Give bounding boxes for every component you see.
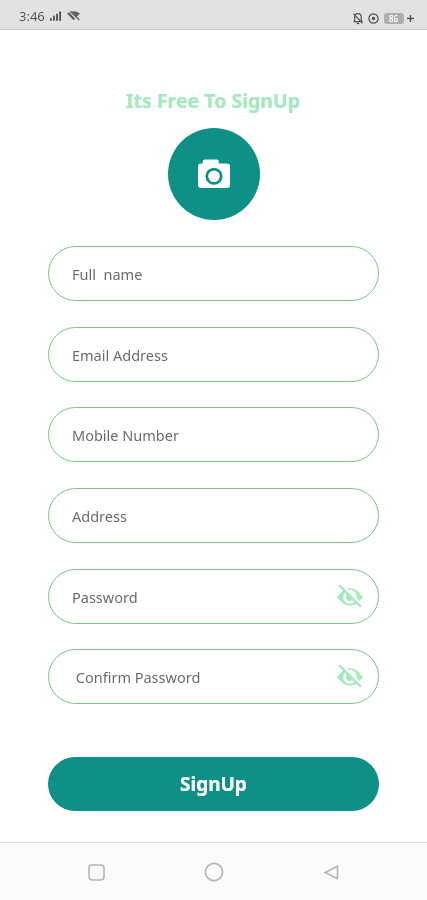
button[interactable]: Confirm Password [48,649,379,704]
staticText: Its Free To SignUp [126,87,301,114]
button[interactable]: Mobile Number [48,407,379,462]
button[interactable]: Password [48,569,379,624]
button[interactable]: Address [48,488,379,543]
staticText: Password [72,587,138,607]
button[interactable] [168,128,260,220]
staticText: 3:46 [19,7,45,25]
button[interactable] [192,850,236,894]
staticText: Email Address [72,345,168,365]
button[interactable]: Email Address [48,327,379,382]
staticText: SignUp [180,771,247,797]
button[interactable]: Full name [48,246,379,301]
button[interactable]: SignUp [48,757,379,811]
staticText: Full name [72,264,143,284]
staticText: Mobile Number [72,425,179,445]
button[interactable] [309,850,353,894]
button[interactable] [74,850,118,894]
staticText: Confirm Password [72,667,201,687]
staticText: 86 [389,13,399,24]
staticText: Address [72,506,127,526]
